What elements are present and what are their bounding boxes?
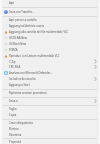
button[interactable]: GX Bach New: [2, 41, 99, 47]
button[interactable]: Crea collegamento: [2, 120, 99, 126]
staticText: Aggiungi a Start: [9, 83, 30, 87]
button[interactable]: CRC SHA: [2, 64, 99, 70]
staticText: Crea collegamento: [9, 121, 34, 125]
button[interactable]: Taglia: [2, 106, 99, 112]
staticText: Analizza con Microsoft Defender...: [9, 71, 53, 75]
staticText: Invia a: [9, 99, 18, 103]
staticText: Riproduci con Lettore multimediale VLC: [9, 54, 60, 58]
button[interactable]: Elimina: [2, 126, 99, 132]
staticText: CRC SHA: [9, 65, 21, 69]
staticText: GX Bach New: [9, 42, 27, 46]
staticText: Elimina: [9, 127, 19, 131]
staticText: Invia con Transfer...: [9, 10, 34, 14]
button[interactable]: Invia con Transfer...: [2, 9, 99, 15]
button[interactable]: Rinomina: [2, 132, 99, 137]
staticText: Copia: [9, 113, 17, 117]
staticText: 7-Zip: [9, 60, 16, 64]
button[interactable]: Includi nella raccolta: [2, 76, 99, 82]
button[interactable]: GX DLNA New: [2, 35, 99, 41]
button[interactable]: Ripristina versioni precedenti: [2, 90, 99, 96]
other: Open submenu: [92, 64, 99, 70]
button[interactable]: Copia: [2, 112, 99, 118]
staticText: Rinomina: [9, 133, 22, 137]
staticText: Ripristina versioni precedenti: [9, 91, 47, 95]
staticText: Includi nella raccolta: [9, 77, 36, 81]
staticText: Aggiungi alla cartella dei file multimed…: [9, 30, 69, 34]
other: Open submenu: [92, 76, 99, 82]
button[interactable]: Aggiungi alla cartella dei file multimed…: [2, 29, 99, 35]
staticText: FORZA: [9, 48, 18, 52]
staticText: Apri: [9, 1, 15, 5]
other: Open submenu: [92, 59, 99, 64]
button[interactable]: Apri percorso cartella: [2, 17, 99, 23]
button[interactable]: Aggiungi a Start: [2, 82, 99, 88]
other: Open submenu: [92, 98, 99, 104]
staticText: Apri percorso cartella: [9, 18, 37, 22]
button[interactable]: FORZA: [2, 47, 99, 53]
button[interactable]: 7-Zip: [2, 59, 99, 64]
staticText: Proprietà: [9, 140, 21, 144]
button[interactable]: Analizza con Microsoft Defender...: [2, 70, 99, 76]
staticText: GX DLNA New: [9, 36, 27, 40]
staticText: Aggiungi ad Archivio nuovo: [9, 24, 45, 28]
button[interactable]: Aggiungi ad Archivio nuovo: [2, 23, 99, 29]
button[interactable]: Riproduci con Lettore multimediale VLC: [2, 53, 99, 59]
button[interactable]: Proprietà: [2, 139, 99, 144]
button[interactable]: Invia a: [2, 98, 99, 104]
staticText: Taglia: [9, 107, 17, 111]
button[interactable]: Apri: [2, 0, 99, 6]
